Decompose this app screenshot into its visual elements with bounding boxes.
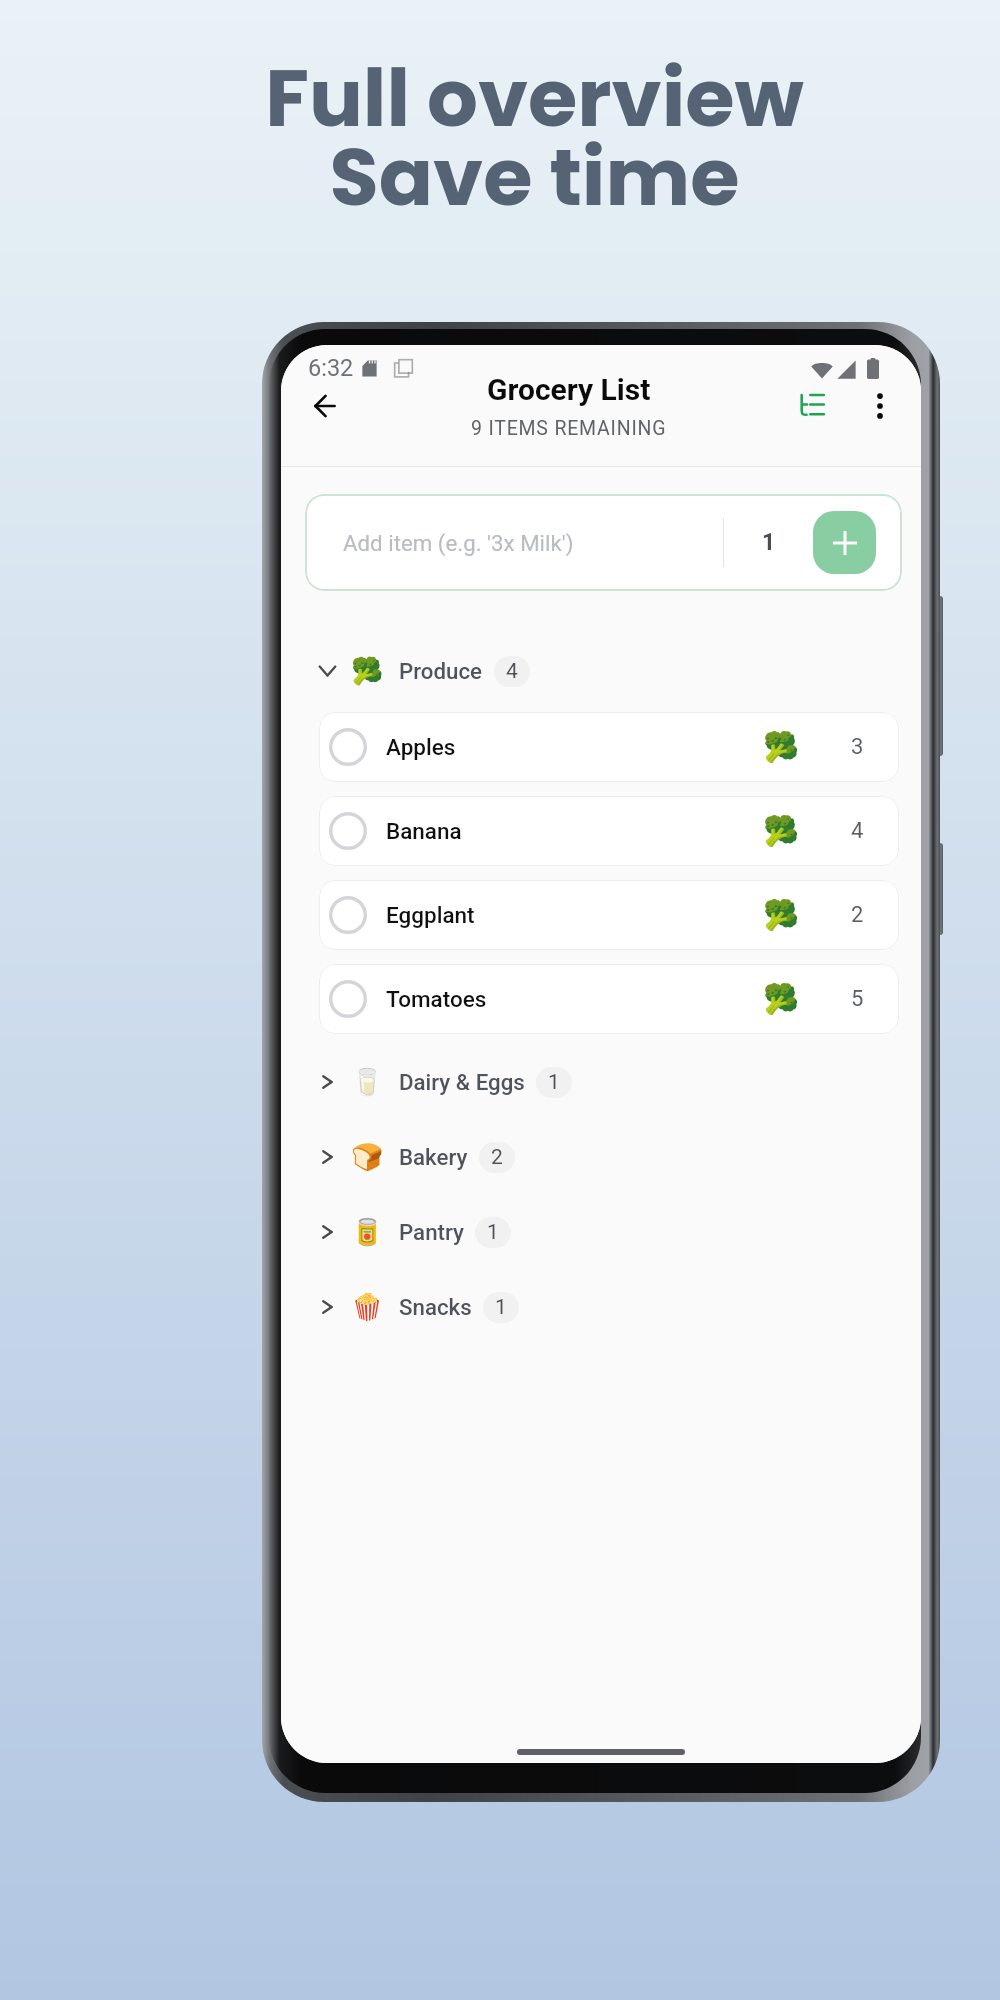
button[interactable]: 1 xyxy=(724,494,813,591)
button[interactable]: 🍞 xyxy=(319,1131,921,1183)
staticText: 🥛 xyxy=(351,1067,384,1097)
staticText: 2 xyxy=(851,902,864,928)
staticText: 1 xyxy=(487,1220,499,1245)
button[interactable]: Add item (e.g. '3x Milk') xyxy=(343,494,723,591)
staticText: 🥦 xyxy=(763,730,800,764)
staticText: 🍿 xyxy=(351,1292,384,1322)
button[interactable]: Eggplant xyxy=(319,880,899,950)
button[interactable]: More options xyxy=(852,378,908,434)
staticText: 3 xyxy=(851,734,864,760)
staticText: 🥦 xyxy=(763,898,800,932)
staticText: 🥦 xyxy=(351,656,384,686)
button[interactable]: 🥫 xyxy=(319,1206,921,1258)
staticText: Grocery List xyxy=(487,372,651,407)
staticText: 🍞 xyxy=(351,1142,384,1172)
staticText: Pantry xyxy=(399,1219,464,1245)
button[interactable]: 🍿 xyxy=(319,1281,921,1333)
staticText: Produce xyxy=(399,658,483,684)
staticText: Full overview Save time xyxy=(265,42,804,233)
staticText: 🥦 xyxy=(763,814,800,848)
staticText: Tomatoes xyxy=(386,986,487,1012)
button[interactable]: Tomatoes xyxy=(319,964,899,1034)
staticText: 9 ITEMS REMAINING xyxy=(471,417,667,440)
staticText: Add item (e.g. '3x Milk') xyxy=(343,530,574,556)
button[interactable]: Add xyxy=(813,511,876,574)
staticText: 2 xyxy=(491,1145,503,1170)
staticText: 🥦 xyxy=(763,982,800,1016)
staticText: Apples xyxy=(386,734,456,760)
button[interactable]: Back xyxy=(296,378,352,434)
staticText: Bakery xyxy=(399,1144,468,1170)
staticText: Snacks xyxy=(399,1294,472,1320)
staticText: 5 xyxy=(851,986,864,1012)
staticText: Banana xyxy=(386,818,462,844)
button[interactable]: Apples xyxy=(319,712,899,782)
staticText: Eggplant xyxy=(386,902,475,928)
staticText: 4 xyxy=(506,659,518,684)
staticText: 1 xyxy=(548,1070,560,1095)
staticText: 6:32 xyxy=(308,354,354,382)
button[interactable]: 🥦 xyxy=(319,645,921,697)
staticText: 4 xyxy=(851,818,864,844)
staticText: 🥫 xyxy=(351,1217,384,1247)
staticText: Dairy & Eggs xyxy=(399,1069,525,1095)
button[interactable]: Banana xyxy=(319,796,899,866)
staticText: 1 xyxy=(762,529,776,556)
button[interactable]: 🥛 xyxy=(319,1056,921,1108)
button[interactable]: Group by category xyxy=(784,374,840,430)
staticText: 1 xyxy=(495,1295,507,1320)
